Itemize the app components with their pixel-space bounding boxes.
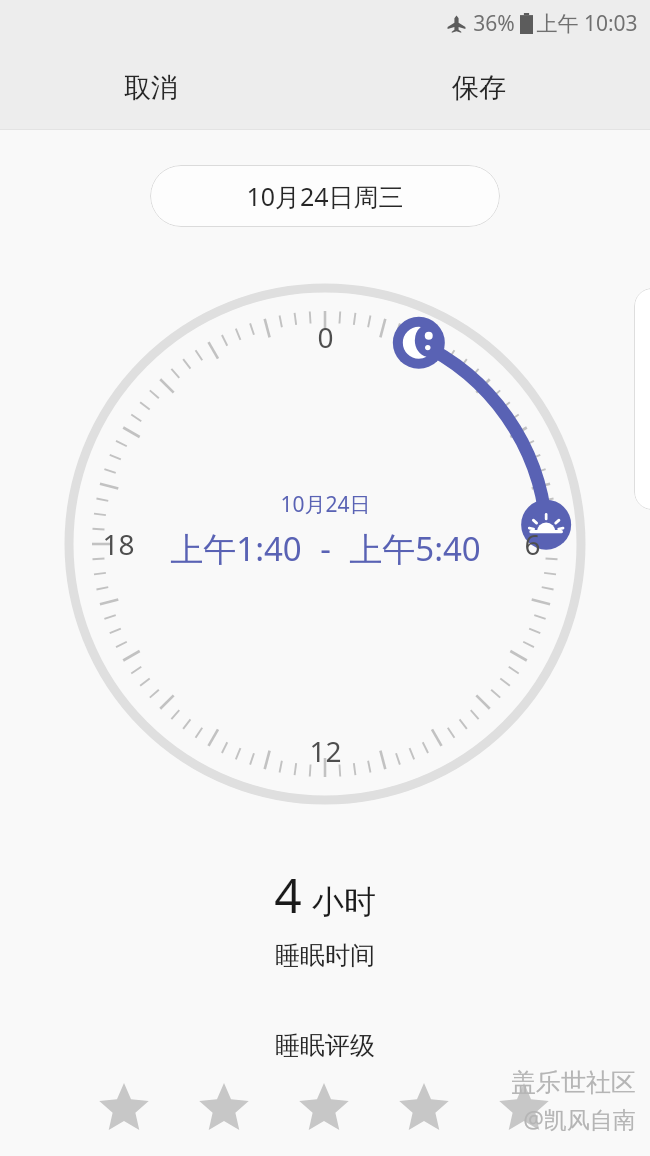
staticText: 保存	[452, 71, 506, 105]
staticText: @凯风自南	[523, 1103, 636, 1134]
button[interactable]: 保存	[436, 61, 522, 115]
staticText: 睡眠时间	[275, 940, 375, 971]
staticText: 上午5:40	[349, 526, 481, 571]
staticText: 12	[309, 732, 342, 770]
staticText: 10月24日周三	[246, 179, 404, 213]
staticText: 上午 10:03	[536, 9, 638, 38]
staticText: 取消	[124, 71, 178, 105]
staticText: 6	[524, 525, 541, 563]
staticText: 0	[317, 318, 334, 356]
staticText: -	[320, 526, 331, 571]
staticText: 4	[274, 862, 302, 927]
staticText: 36%	[473, 9, 515, 38]
staticText: 盖乐世社区	[511, 1067, 636, 1098]
button[interactable]: Star 4	[396, 1081, 452, 1137]
button[interactable]: Star 2	[196, 1081, 252, 1137]
button[interactable]: Star 5	[496, 1081, 552, 1137]
button[interactable]: Star 3	[296, 1081, 352, 1137]
button[interactable]: 取消	[108, 61, 194, 115]
staticText: 18	[102, 525, 135, 563]
staticText: 睡眠评级	[275, 1030, 375, 1061]
staticText: 上午1:40	[170, 526, 302, 571]
button[interactable]: Next day panel	[634, 288, 650, 510]
staticText: 小时	[312, 882, 376, 922]
button[interactable]: Star 1	[96, 1081, 152, 1137]
button[interactable]: 10月24日周三	[150, 165, 500, 227]
staticText: 10月24日	[280, 490, 371, 519]
